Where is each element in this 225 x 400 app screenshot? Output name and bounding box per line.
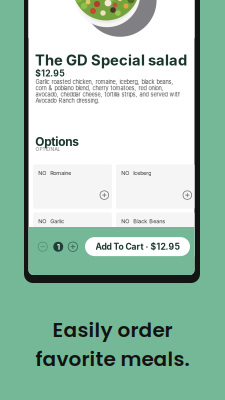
button[interactable]: NO Romaine (33, 164, 112, 209)
button[interactable]: NO Garlic (33, 212, 112, 257)
staticText: NO Black Beans (121, 218, 165, 224)
staticText: NO Iceberg (121, 170, 151, 176)
staticText: OPTIONAL (35, 146, 60, 152)
staticText: 1 (57, 242, 60, 252)
staticText: Add To Cart · $12.95 (95, 241, 179, 252)
staticText: $12.95 (35, 68, 64, 78)
staticText: favorite meals. (35, 345, 189, 373)
staticText: Options (35, 135, 79, 149)
button[interactable]: Add To Cart · $12.95 (85, 237, 190, 256)
staticText: NO Garlic (38, 218, 64, 224)
staticText: Easily order (52, 316, 172, 344)
button[interactable]: Quantity 1 (53, 242, 63, 252)
button[interactable]: NO Black Beans (116, 212, 195, 257)
staticText: The GD Special salad (35, 51, 187, 69)
staticText: Garlic roasted chicken, romaine, iceberg… (35, 79, 180, 104)
button[interactable]: Decrease quantity (38, 242, 47, 251)
button[interactable]: NO Iceberg (116, 164, 195, 209)
staticText: NO Romaine (38, 170, 71, 176)
button[interactable]: Increase quantity (68, 242, 78, 251)
